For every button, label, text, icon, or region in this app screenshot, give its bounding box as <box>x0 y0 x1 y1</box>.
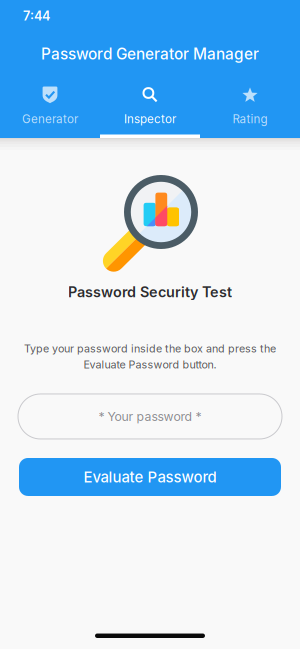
staticText: * Your password * <box>98 409 201 424</box>
staticText: Generator <box>22 112 78 126</box>
button[interactable]: Rating <box>200 85 300 133</box>
button[interactable]: Inspector <box>100 85 200 133</box>
staticText: Inspector <box>124 112 176 126</box>
staticText: 7:44 <box>23 8 50 24</box>
staticText: Rating <box>232 112 267 126</box>
staticText: Type your password inside the box and pr… <box>24 342 276 355</box>
staticText: Evaluate Password button. <box>83 358 216 371</box>
button[interactable]: Generator <box>0 85 100 133</box>
staticText: Evaluate Password <box>83 468 216 486</box>
button[interactable]: Evaluate Password <box>0 458 300 496</box>
staticText: Password Security Test <box>68 283 232 301</box>
staticText: Password Generator Manager <box>41 45 259 63</box>
